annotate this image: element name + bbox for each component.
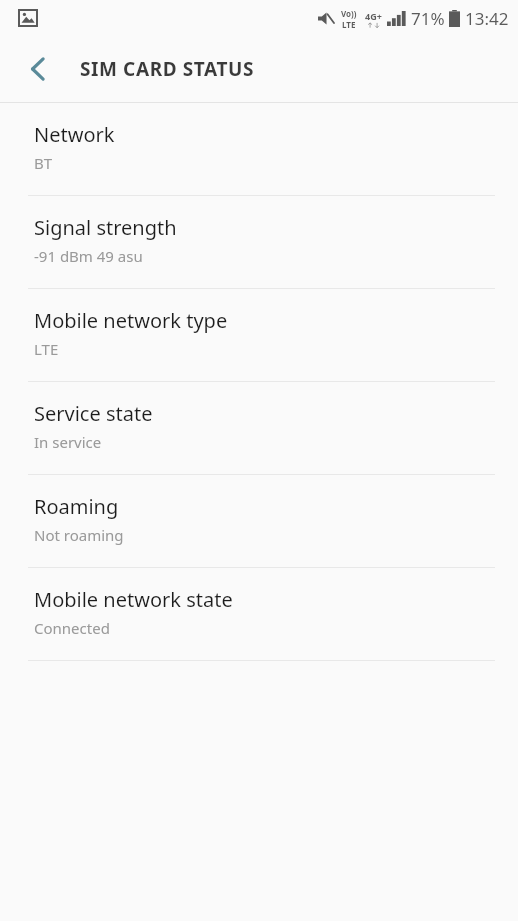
staticText: Network [34, 121, 115, 148]
staticText: 13:42 [465, 7, 509, 30]
button[interactable]: Service state [0, 382, 518, 474]
staticText: Connected [34, 618, 110, 638]
staticText: In service [34, 432, 102, 452]
staticText: 4G+ [365, 10, 382, 22]
staticText: Service state [34, 400, 153, 427]
staticText: 71% [411, 7, 445, 30]
staticText: -91 dBm 49 asu [34, 246, 143, 266]
staticText: Signal strength [34, 214, 177, 241]
button[interactable]: Roaming [0, 475, 518, 567]
staticText: Vo)) [341, 8, 357, 19]
button[interactable]: Signal strength [0, 196, 518, 288]
button[interactable]: Mobile network state [0, 568, 518, 660]
staticText: Mobile network state [34, 586, 233, 613]
staticText: SIM CARD STATUS [80, 56, 255, 82]
staticText: LTE [342, 19, 356, 30]
staticText: Mobile network type [34, 307, 228, 334]
staticText: Not roaming [34, 525, 124, 545]
staticText: Roaming [34, 493, 119, 520]
button[interactable]: Mobile network type [0, 289, 518, 381]
button[interactable]: Network [0, 103, 518, 195]
button[interactable]: Back [14, 45, 62, 93]
staticText: LTE [34, 339, 59, 359]
staticText: BT [34, 153, 53, 173]
